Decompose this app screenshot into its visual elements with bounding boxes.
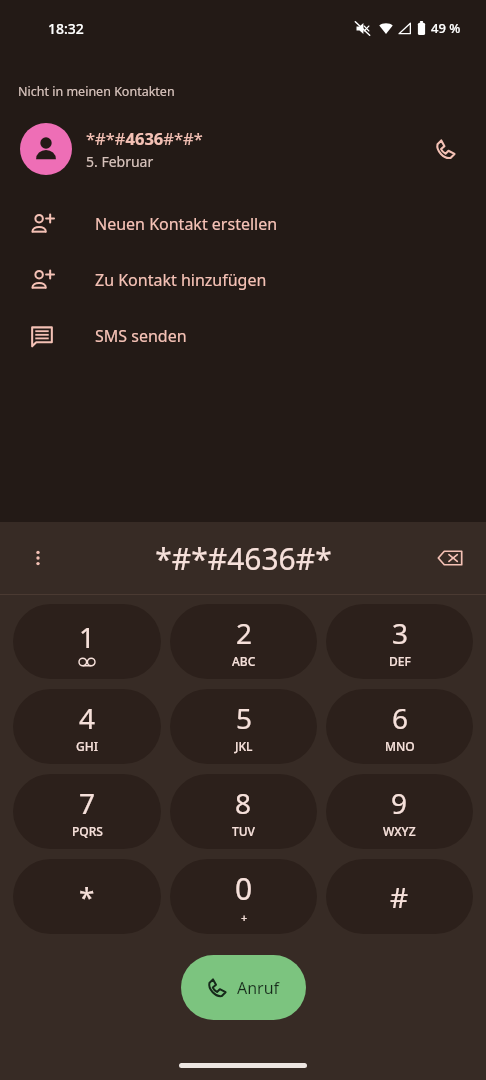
staticText: 0 [235, 868, 253, 909]
button[interactable]: 4 [13, 689, 161, 764]
staticText: SMS senden [95, 325, 187, 347]
button[interactable]: 0 [170, 859, 317, 934]
staticText: Zu Kontakt hinzufügen [95, 269, 267, 291]
button[interactable]: Löschen [426, 534, 474, 582]
staticText: ABC [232, 653, 256, 669]
staticText: 49 % [431, 19, 461, 37]
staticText: 2 [236, 614, 253, 652]
staticText: 5 [236, 699, 253, 737]
staticText: MNO [385, 738, 415, 754]
staticText: TUV [232, 823, 255, 839]
button[interactable]: 7 [13, 774, 161, 849]
staticText: 4 [79, 699, 96, 737]
button[interactable]: Neuen Kontakt erstellen [0, 196, 486, 252]
button[interactable]: 5 [170, 689, 317, 764]
button[interactable]: SMS senden [0, 308, 486, 364]
staticText: Anruf [237, 977, 280, 999]
staticText: + [241, 910, 248, 925]
staticText: *#*#4636#*#* [86, 127, 203, 149]
button[interactable]: 2 [170, 604, 317, 679]
staticText: 5. Februar [86, 152, 154, 171]
staticText: DEF [389, 653, 411, 669]
button[interactable]: 1 [13, 604, 161, 679]
button[interactable]: 6 [326, 689, 473, 764]
button[interactable]: Anrufen [418, 122, 472, 176]
staticText: *#*#4636#* [155, 538, 332, 579]
staticText: 9 [391, 784, 408, 822]
staticText: 8 [235, 784, 252, 822]
staticText: GHI [76, 738, 98, 754]
button[interactable]: Weitere Optionen [14, 534, 62, 582]
staticText: # [390, 878, 409, 916]
button[interactable]: Anruf [181, 955, 306, 1020]
button[interactable]: # [326, 859, 473, 934]
staticText: WXYZ [383, 823, 416, 839]
staticText: 1 [79, 618, 96, 656]
button[interactable]: * [13, 859, 161, 934]
button[interactable]: Zu Kontakt hinzufügen [0, 252, 486, 308]
staticText: * [79, 878, 95, 916]
staticText: 3 [392, 614, 409, 652]
button[interactable]: 3 [326, 604, 473, 679]
button[interactable]: *#*#4636#*#* [0, 119, 486, 179]
button[interactable]: 9 [326, 774, 473, 849]
staticText: JKL [235, 738, 253, 754]
staticText: Nicht in meinen Kontakten [18, 83, 175, 100]
button[interactable]: 8 [170, 774, 317, 849]
staticText: Neuen Kontakt erstellen [95, 213, 278, 235]
staticText: PQRS [72, 823, 103, 839]
staticText: 18:32 [48, 19, 84, 38]
staticText: 6 [392, 699, 409, 737]
staticText: 7 [79, 784, 96, 822]
